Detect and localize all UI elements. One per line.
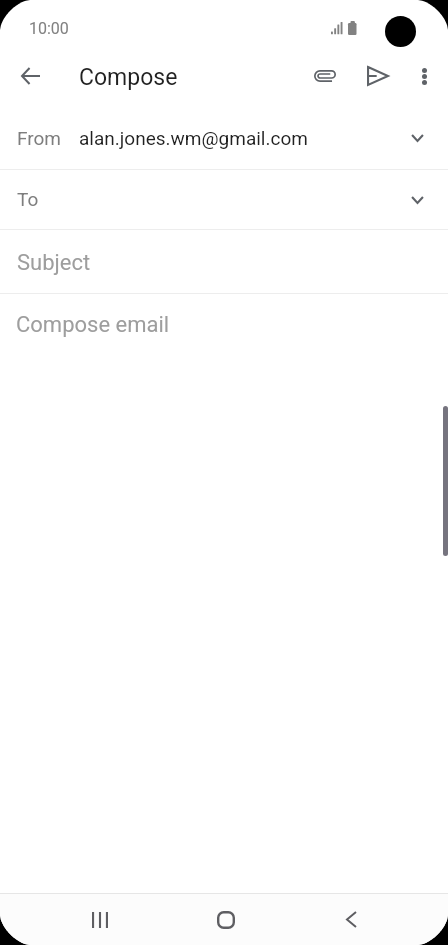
button[interactable]: Home bbox=[202, 894, 250, 945]
staticText: Subject bbox=[17, 250, 91, 276]
staticText: Compose bbox=[79, 64, 178, 91]
button[interactable]: Send bbox=[354, 52, 402, 100]
button[interactable]: More options bbox=[400, 52, 448, 100]
button[interactable]: Compose email bbox=[0, 294, 448, 893]
button[interactable]: Recent apps bbox=[76, 894, 124, 945]
button[interactable]: To bbox=[0, 170, 448, 229]
button[interactable]: From bbox=[0, 106, 448, 169]
button[interactable]: Attach file bbox=[301, 52, 349, 100]
staticText: Compose email bbox=[16, 312, 170, 338]
button[interactable]: Back bbox=[327, 894, 375, 945]
staticText: alan.jones.wm@gmail.com bbox=[79, 127, 308, 149]
staticText: To bbox=[17, 188, 39, 210]
staticText: 10:00 bbox=[29, 19, 69, 38]
staticText: From bbox=[17, 127, 62, 149]
button[interactable]: Navigate up bbox=[6, 52, 54, 100]
button[interactable]: Subject bbox=[0, 230, 448, 293]
